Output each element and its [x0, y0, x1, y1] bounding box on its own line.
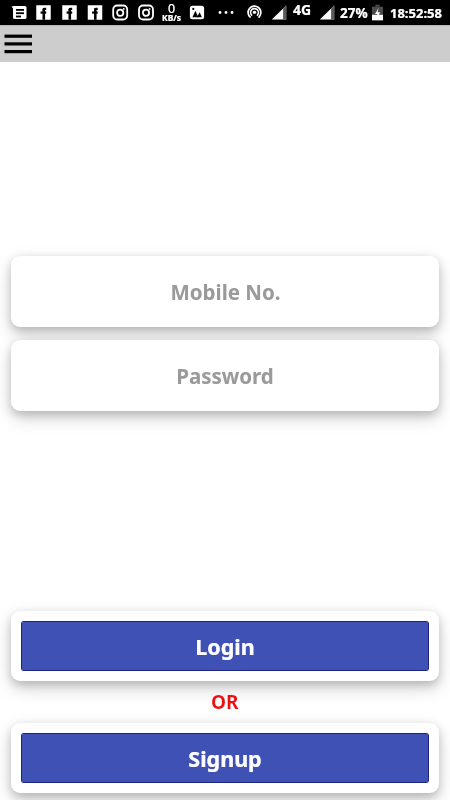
staticText: Password — [176, 362, 274, 390]
staticText: Signup — [188, 744, 262, 773]
staticText: 27% — [340, 4, 368, 22]
staticText: Mobile No. — [170, 278, 281, 306]
staticText: 18:52:58 — [390, 4, 442, 22]
button[interactable]: Signup — [21, 733, 429, 783]
button[interactable]: Login — [21, 621, 429, 671]
staticText: Login — [195, 632, 255, 661]
staticText: 4G — [293, 0, 312, 19]
staticText: OR — [211, 689, 239, 715]
button[interactable]: Open navigation menu — [0, 25, 36, 62]
button[interactable]: Mobile No. — [11, 256, 439, 327]
staticText: 0 — [168, 0, 176, 17]
button[interactable]: Password — [11, 340, 439, 411]
staticText: KB/s — [162, 12, 182, 24]
